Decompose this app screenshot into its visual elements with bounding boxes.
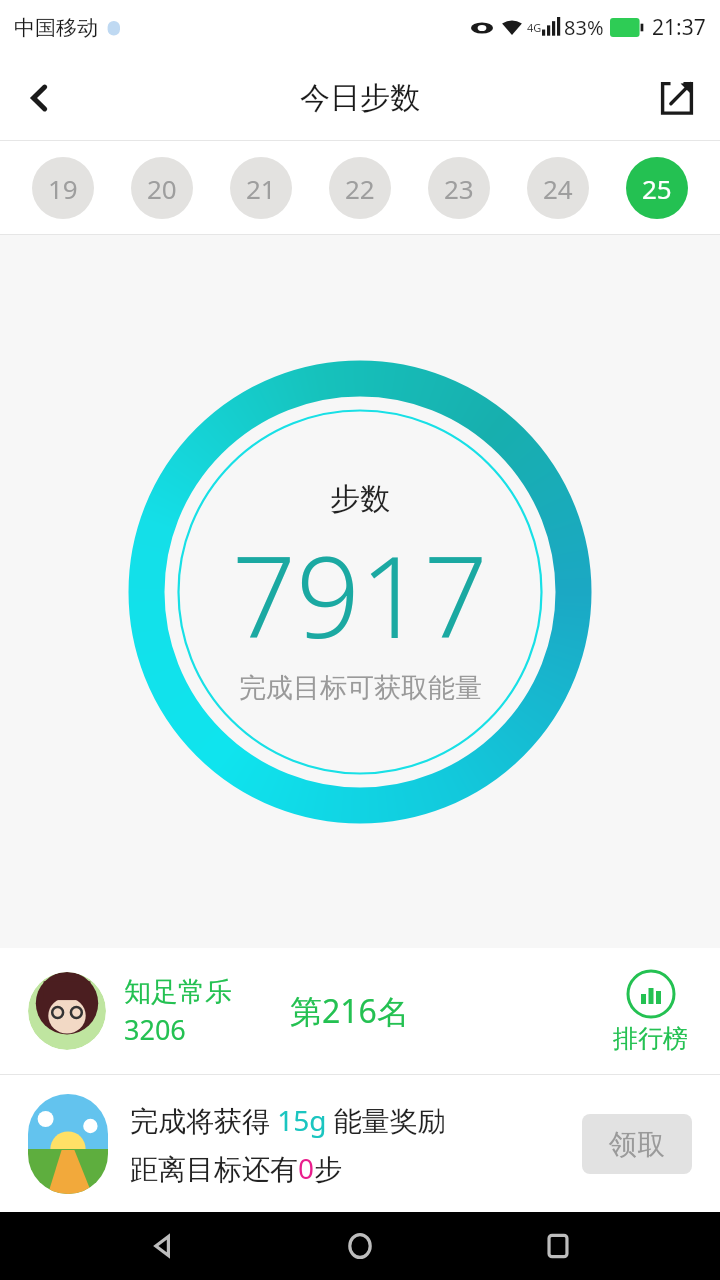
staticText: 步数 [330, 480, 390, 518]
button[interactable]: 领取 [582, 1114, 692, 1174]
button[interactable]: 21 [230, 157, 292, 219]
button[interactable]: Recent apps [523, 1212, 593, 1280]
staticText: 第216名 [290, 989, 409, 1033]
staticText: 20 [147, 171, 177, 206]
staticText: 24 [543, 171, 573, 206]
staticText: 4G [527, 20, 542, 35]
staticText: 3206 [124, 1011, 186, 1048]
button[interactable]: 24 [527, 157, 589, 219]
button[interactable]: 排行榜 [609, 969, 692, 1054]
staticText: 25 [642, 171, 672, 206]
button[interactable]: 23 [428, 157, 490, 219]
button[interactable]: Back [10, 68, 70, 128]
staticText: 距离目标还有0步 [130, 1149, 343, 1187]
button[interactable]: Back [128, 1212, 198, 1280]
staticText: 今日步数 [300, 79, 420, 117]
staticText: 21 [246, 171, 276, 206]
staticText: 完成目标可获取能量 [239, 671, 482, 705]
staticText: 21:37 [652, 13, 706, 42]
staticText: 83% [564, 14, 604, 41]
staticText: 22 [345, 171, 375, 206]
staticText: 19 [48, 171, 78, 206]
staticText: 领取 [609, 1127, 665, 1162]
staticText: 中国移动 [14, 15, 98, 41]
staticText: 23 [444, 171, 474, 206]
button[interactable]: 22 [329, 157, 391, 219]
button[interactable]: 25 [626, 157, 688, 219]
button[interactable]: Home [325, 1212, 395, 1280]
button[interactable]: 19 [32, 157, 94, 219]
button[interactable]: 知足常乐 [0, 948, 720, 1074]
staticText: 7917 [232, 518, 488, 671]
button[interactable]: Share [648, 69, 706, 127]
staticText: 完成将获得 15g 能量奖励 [130, 1101, 446, 1139]
button[interactable]: 20 [131, 157, 193, 219]
staticText: 排行榜 [613, 1023, 688, 1054]
staticText: 知足常乐 [124, 975, 232, 1009]
